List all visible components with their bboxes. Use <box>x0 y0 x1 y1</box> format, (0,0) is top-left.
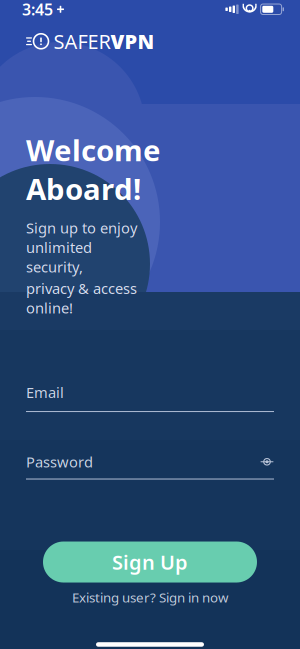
staticText: Welcome Aboard! <box>26 130 161 208</box>
staticText: privacy & access online! <box>26 279 137 318</box>
staticText: VPN <box>110 28 154 55</box>
button[interactable]: Email <box>26 383 274 412</box>
button[interactable]: Password <box>26 452 274 479</box>
button[interactable]: Sign Up <box>43 541 257 582</box>
button[interactable]: Existing user? Sign in now <box>62 582 238 612</box>
staticText: Password <box>26 452 93 471</box>
staticText: Email <box>26 383 64 402</box>
staticText: 3:45 <box>22 0 53 20</box>
staticText: Existing user? Sign in now <box>72 588 228 606</box>
staticText: Sign up to enjoy unlimited security, <box>26 218 137 277</box>
staticText: Sign Up <box>112 549 188 575</box>
staticText: SAFER <box>53 28 110 55</box>
